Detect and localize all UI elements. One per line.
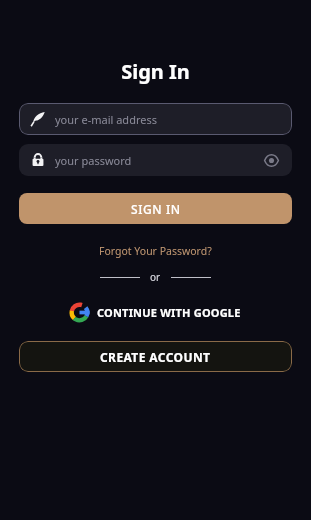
staticText: your e-mail address — [55, 112, 157, 127]
staticText: SIGN IN — [131, 201, 181, 217]
button[interactable]: CREATE ACCOUNT — [19, 341, 292, 372]
button[interactable]: Forgot Your Password? — [93, 242, 218, 260]
staticText: or — [150, 270, 161, 284]
staticText: Forgot Your Password? — [99, 244, 212, 258]
button[interactable]: Show password — [261, 150, 281, 170]
staticText: CONTINUE WITH GOOGLE — [97, 305, 241, 320]
button[interactable]: your password — [19, 144, 292, 176]
button[interactable]: your e-mail address — [19, 103, 292, 135]
button[interactable]: SIGN IN — [19, 193, 292, 224]
staticText: your password — [55, 153, 261, 168]
button[interactable]: CONTINUE WITH GOOGLE — [63, 300, 249, 325]
staticText: CREATE ACCOUNT — [100, 349, 211, 365]
staticText: Sign In — [121, 58, 190, 85]
